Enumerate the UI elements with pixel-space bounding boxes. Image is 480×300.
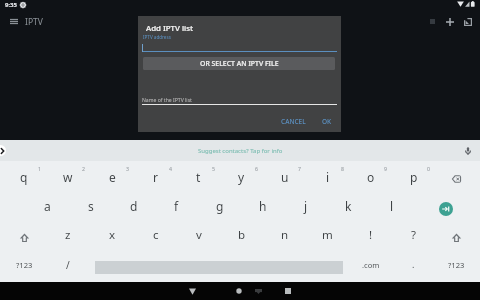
button[interactable]: Back xyxy=(183,282,201,300)
staticText: 9:35 xyxy=(5,1,17,9)
staticText: r xyxy=(153,169,158,185)
staticText: ?123 xyxy=(16,260,33,270)
button[interactable]: Symbols xyxy=(435,252,478,282)
staticText: n xyxy=(281,227,289,243)
button[interactable]: e xyxy=(90,161,134,192)
staticText: IPTV xyxy=(25,16,43,28)
staticText: y xyxy=(238,169,245,185)
staticText: 5 xyxy=(212,165,215,172)
staticText: k xyxy=(345,198,352,214)
staticText: 4 xyxy=(169,165,172,172)
staticText: 0 xyxy=(427,165,430,172)
button[interactable]: b xyxy=(220,222,263,252)
button[interactable]: Symbols xyxy=(2,252,46,282)
staticText: ?123 xyxy=(448,260,465,270)
staticText: h xyxy=(259,198,267,214)
button[interactable]: w xyxy=(46,161,90,192)
staticText: s xyxy=(88,198,94,214)
staticText: w xyxy=(63,169,73,185)
button[interactable]: y xyxy=(220,161,263,192)
button[interactable]: / xyxy=(46,252,89,282)
button[interactable]: t xyxy=(177,161,220,192)
staticText: 8 xyxy=(341,165,344,172)
staticText: c xyxy=(153,227,159,243)
staticText: f xyxy=(174,198,179,214)
button[interactable]: j xyxy=(284,192,327,222)
button[interactable]: Shift xyxy=(435,222,478,252)
staticText: OK xyxy=(322,117,332,126)
button[interactable]: n xyxy=(263,222,306,252)
staticText: 9 xyxy=(384,165,387,172)
button[interactable]: r xyxy=(134,161,177,192)
staticText: z xyxy=(65,227,71,243)
staticText: g xyxy=(216,198,224,214)
button[interactable]: Home xyxy=(230,282,248,300)
button[interactable]: Go xyxy=(439,202,453,216)
button[interactable]: p xyxy=(392,161,435,192)
staticText: j xyxy=(304,198,308,214)
button[interactable]: s xyxy=(69,192,112,222)
button[interactable]: Voice input xyxy=(461,144,475,158)
button[interactable]: c xyxy=(134,222,177,252)
button[interactable]: Shift xyxy=(2,222,46,252)
staticText: p xyxy=(410,169,418,185)
staticText: v xyxy=(196,227,202,243)
button[interactable]: OK xyxy=(319,115,335,128)
button[interactable]: k xyxy=(327,192,370,222)
button[interactable]: Recent apps xyxy=(279,282,297,300)
button[interactable]: o xyxy=(349,161,392,192)
staticText: i xyxy=(326,169,330,185)
staticText: 6 xyxy=(255,165,258,172)
staticText: 1 xyxy=(38,165,41,172)
staticText: 7 xyxy=(298,165,301,172)
button[interactable]: q xyxy=(2,161,46,192)
staticText: OR SELECT AN IPTV FILE xyxy=(200,59,279,68)
staticText: Suggest contacts? Tap for info xyxy=(198,147,283,155)
staticText: 2 xyxy=(82,165,85,172)
button[interactable]: Show more suggestions xyxy=(0,145,6,156)
button[interactable]: Switch layout xyxy=(424,13,440,29)
staticText: d xyxy=(130,198,138,214)
button[interactable]: v xyxy=(177,222,220,252)
staticText: Name of the IPTV list xyxy=(142,97,192,104)
staticText: Add IPTV list xyxy=(146,23,194,34)
button[interactable]: Switch input method xyxy=(249,282,267,300)
button[interactable]: CANCEL xyxy=(278,115,309,128)
button[interactable]: u xyxy=(263,161,306,192)
button[interactable]: i xyxy=(306,161,349,192)
staticText: 3 xyxy=(126,165,129,172)
staticText: a xyxy=(44,198,51,214)
button[interactable]: l xyxy=(370,192,413,222)
button[interactable]: Backspace xyxy=(435,161,478,192)
button[interactable]: a xyxy=(25,192,69,222)
staticText: ! xyxy=(369,227,373,243)
button[interactable]: h xyxy=(241,192,284,222)
staticText: x xyxy=(109,227,116,243)
button[interactable]: Cast xyxy=(460,14,476,30)
button[interactable]: ? xyxy=(392,222,435,252)
button[interactable]: x xyxy=(90,222,134,252)
button[interactable]: ! xyxy=(349,222,392,252)
staticText: CANCEL xyxy=(281,117,306,126)
button[interactable]: .com xyxy=(349,252,392,282)
button[interactable]: Open navigation drawer xyxy=(6,13,22,29)
button[interactable]: z xyxy=(46,222,90,252)
staticText: m xyxy=(322,227,333,243)
staticText: e xyxy=(109,169,116,185)
staticText: t xyxy=(196,169,201,185)
staticText: l xyxy=(390,198,394,214)
button[interactable]: d xyxy=(112,192,155,222)
staticText: IPTV address xyxy=(143,34,171,40)
staticText: q xyxy=(20,169,28,185)
button[interactable]: g xyxy=(198,192,241,222)
staticText: ? xyxy=(411,227,416,243)
button[interactable]: OR SELECT AN IPTV FILE xyxy=(143,57,335,70)
staticText: . xyxy=(412,258,415,270)
button[interactable]: f xyxy=(155,192,198,222)
staticText: .com xyxy=(362,260,380,270)
staticText: / xyxy=(66,258,70,272)
button[interactable]: Add list xyxy=(442,14,458,30)
button[interactable]: . xyxy=(392,252,435,282)
button[interactable]: m xyxy=(306,222,349,252)
